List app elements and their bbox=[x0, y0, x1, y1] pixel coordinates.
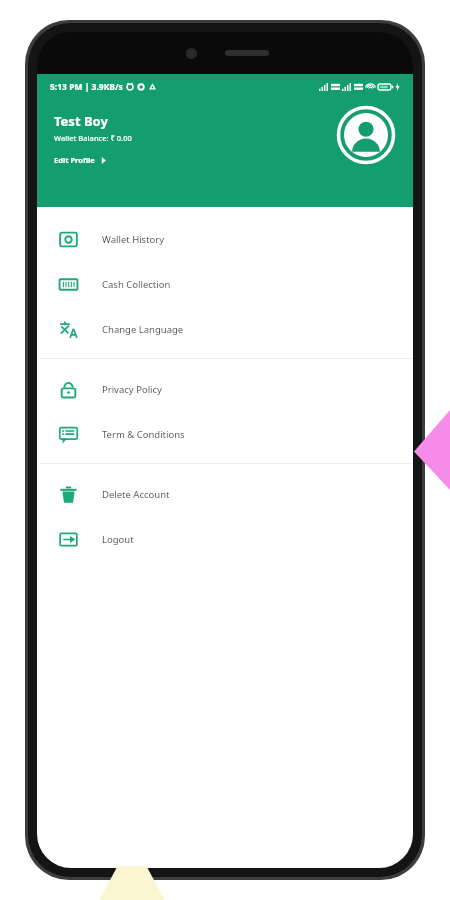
staticText: Test Boy bbox=[54, 112, 108, 130]
staticText: Wallet Balance: ₹ 0.00 bbox=[54, 133, 132, 143]
button[interactable]: Change Language bbox=[37, 307, 413, 352]
button[interactable]: Term & Conditions bbox=[37, 412, 413, 457]
button[interactable]: Delete Account bbox=[37, 472, 413, 517]
staticText: 5:13 PM | 3.9KB/s bbox=[50, 81, 123, 93]
staticText: Delete Account bbox=[102, 488, 170, 501]
staticText: Cash Collection bbox=[102, 278, 171, 291]
button[interactable]: Privacy Policy bbox=[37, 367, 413, 412]
staticText: Change Language bbox=[102, 323, 184, 336]
staticText: Wallet History bbox=[102, 233, 165, 246]
staticText: Edit Profile bbox=[54, 155, 95, 165]
button[interactable]: Edit Profile bbox=[54, 155, 111, 165]
button[interactable]: Profile photo bbox=[337, 106, 395, 164]
staticText: Privacy Policy bbox=[102, 383, 162, 396]
staticText: Term & Conditions bbox=[102, 428, 185, 441]
button[interactable]: Cash Collection bbox=[37, 262, 413, 307]
button[interactable]: Logout bbox=[37, 517, 413, 562]
staticText: Logout bbox=[102, 533, 134, 546]
button[interactable]: Wallet History bbox=[37, 217, 413, 262]
